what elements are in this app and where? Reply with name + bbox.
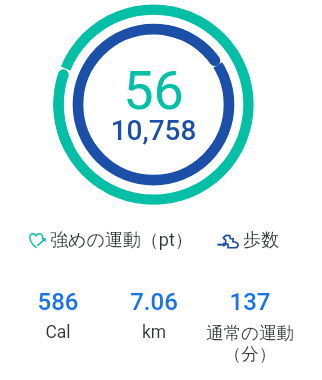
staticText: 586 [3,288,113,316]
button[interactable]: Steps [217,229,279,252]
button[interactable]: 586 [3,288,113,343]
button[interactable]: 137 [195,288,305,366]
staticText: 7.06 [99,288,209,316]
staticText: 通常の運動 （分） [195,322,305,366]
staticText: 10,758 [60,114,247,147]
staticText: 137 [195,288,305,316]
button[interactable]: 7.06 [99,288,209,343]
other: Steps [217,233,239,249]
staticText: 歩数 [243,229,279,252]
staticText: km [99,322,209,343]
other: Heart Points [29,233,46,248]
staticText: 56 [60,59,247,122]
staticText: Cal [3,322,113,343]
staticText: 強めの運動（pt） [50,229,193,252]
button[interactable]: Heart Points [29,229,193,252]
